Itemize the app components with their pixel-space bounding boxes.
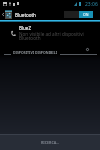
button[interactable]: RICERCA... bbox=[0, 135, 100, 150]
button[interactable]: Back bbox=[0, 9, 5, 20]
staticText: Bluetooth bbox=[15, 12, 36, 18]
staticText: 23:06 bbox=[85, 1, 98, 8]
staticText: ON bbox=[83, 12, 89, 17]
staticText: DISPOSITIVI DISPONIBILI bbox=[13, 50, 58, 55]
staticText: Non visibile ad altri dispositivi Blueto… bbox=[19, 31, 84, 42]
button[interactable]: ON bbox=[64, 11, 93, 18]
staticText: BlueZ bbox=[19, 25, 31, 31]
staticText: RICERCA... bbox=[41, 140, 60, 145]
button[interactable]: BlueZ bbox=[0, 22, 100, 43]
